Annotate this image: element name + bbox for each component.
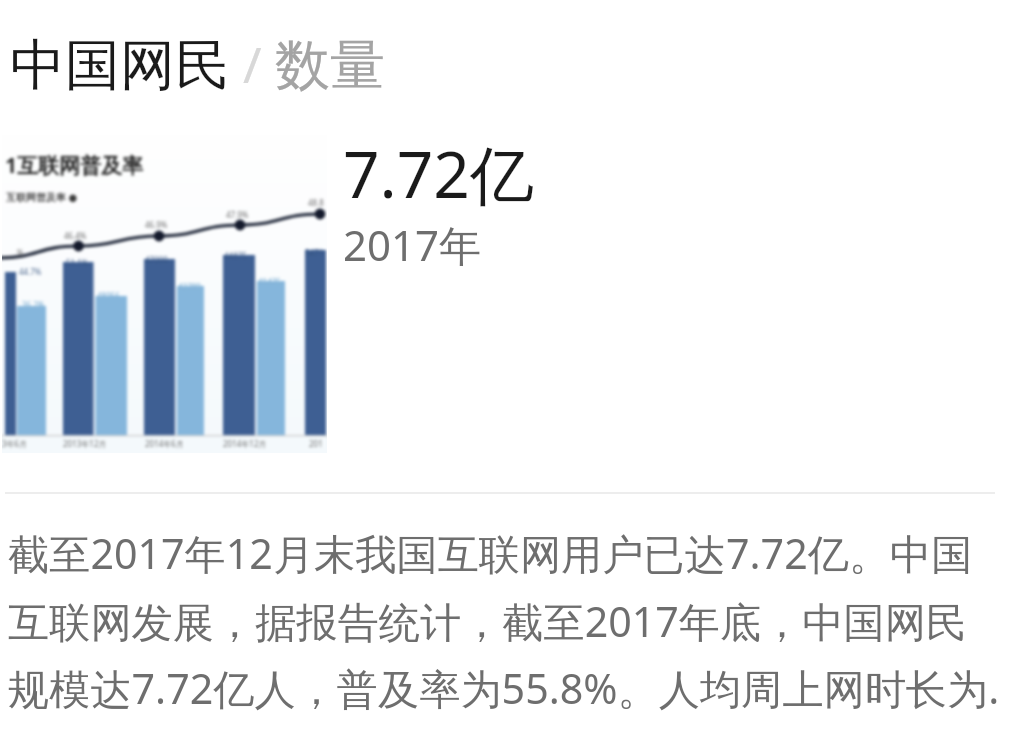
staticText: 互联网普及率 ●	[6, 190, 78, 204]
staticText: /	[230, 30, 275, 98]
staticText: 中国网民	[10, 31, 230, 100]
staticText: 数量	[275, 31, 385, 100]
button[interactable]: 中国网民	[10, 31, 385, 100]
staticText: 2013年12月	[63, 438, 107, 449]
staticText: 3年6月	[2, 438, 28, 449]
staticText: 截至2017年12月末我国互联网用户已达7.72亿。中国互联网发展，据报告统计，…	[8, 525, 1008, 716]
staticText: 47.9%	[226, 209, 249, 220]
staticText: 2014年12月	[223, 438, 267, 449]
staticText: 2014年6月	[145, 438, 184, 449]
staticText: 48956	[97, 290, 120, 301]
staticText: 7.72亿	[343, 130, 534, 217]
staticText: 46.9%	[145, 219, 168, 230]
staticText: 44875	[224, 250, 247, 261]
staticText: 2017年	[343, 216, 482, 273]
staticText: %	[17, 247, 24, 258]
staticText: 41475	[258, 276, 281, 287]
staticText: 47099	[145, 254, 168, 265]
staticText: 1互联网普及率	[5, 151, 144, 180]
staticText: 48.8	[308, 197, 324, 208]
staticText: 46.4%	[64, 230, 87, 241]
staticText: 42789	[178, 281, 201, 292]
staticText: 51.1%	[66, 257, 89, 268]
button[interactable]: 互联网普及率统计图	[2, 135, 327, 453]
staticText: 36.2%	[22, 299, 45, 310]
staticText: 201	[309, 438, 323, 449]
staticText: 44.7%	[19, 266, 42, 277]
staticText: 5471	[305, 247, 324, 258]
